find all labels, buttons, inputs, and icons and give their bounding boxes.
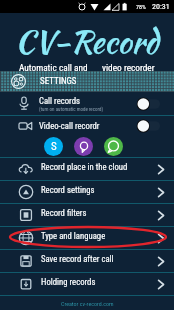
button[interactable]: WhatsApp xyxy=(104,137,123,156)
staticText: CV-Record xyxy=(15,18,159,64)
staticText: video recorder xyxy=(102,62,155,73)
staticText: Creator cv-record.com xyxy=(61,300,114,307)
staticText: Record place in the cloud xyxy=(41,162,157,172)
button[interactable]: Save record after call xyxy=(0,250,174,272)
button[interactable]: Toggle switch xyxy=(137,97,160,111)
button[interactable]: Record place in the cloud xyxy=(0,158,174,180)
staticText: SETTINGS xyxy=(40,76,77,87)
staticText: 20:31 xyxy=(152,2,170,11)
staticText: Record filters xyxy=(41,208,157,218)
staticText: Record settings xyxy=(41,185,157,195)
button[interactable]: Viber xyxy=(74,137,93,156)
staticText: S xyxy=(51,140,57,153)
staticText: Automatic call and xyxy=(19,62,88,73)
button[interactable]: Holding records xyxy=(0,273,174,295)
staticText: (turn on automatic mode record) xyxy=(39,106,104,112)
button[interactable]: Record filters xyxy=(0,204,174,226)
staticText: Video-call recordr xyxy=(39,121,137,131)
button[interactable]: Video-call recordr xyxy=(0,116,174,135)
button[interactable]: Record settings xyxy=(0,181,174,203)
staticText: Type and language xyxy=(41,231,157,241)
button[interactable]: Call records xyxy=(0,92,174,115)
button[interactable]: Toggle switch xyxy=(137,119,160,133)
staticText: Call records xyxy=(39,96,80,106)
staticText: 78% xyxy=(136,3,146,10)
staticText: Holding records xyxy=(41,277,157,287)
button[interactable]: Skype xyxy=(44,137,63,156)
staticText: Save record after call xyxy=(41,254,157,264)
button[interactable]: Type and language xyxy=(0,227,174,249)
